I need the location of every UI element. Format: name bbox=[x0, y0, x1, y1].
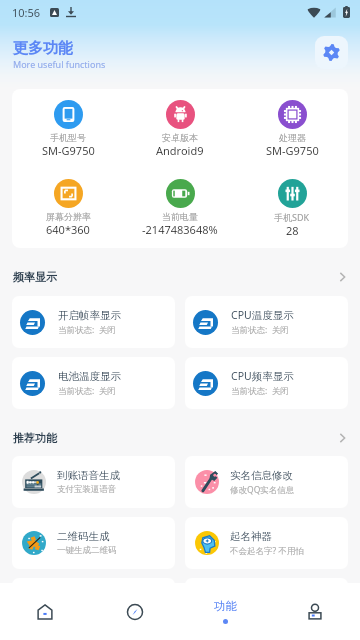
staticText: 处理器 bbox=[279, 132, 306, 143]
staticText: 640*360 bbox=[46, 222, 90, 237]
button[interactable]: Discover bbox=[90, 583, 180, 640]
staticText: 更多功能 bbox=[13, 39, 73, 58]
button[interactable]: 到账语音生成 bbox=[12, 456, 175, 508]
staticText: 安卓版本 bbox=[162, 132, 198, 143]
staticText: -2147483648% bbox=[142, 222, 218, 237]
button[interactable]: 功能 bbox=[180, 583, 270, 640]
button[interactable]: 推荐功能 bbox=[0, 427, 360, 449]
button[interactable]: Settings bbox=[315, 36, 348, 69]
staticText: 当前状态: 关闭 bbox=[231, 385, 289, 397]
staticText: 到账语音生成 bbox=[57, 469, 120, 482]
button[interactable]: 频率显示 bbox=[0, 266, 360, 288]
staticText: 不会起名字? 不用怕 bbox=[230, 545, 304, 557]
staticText: 推荐功能 bbox=[13, 431, 57, 445]
staticText: 实名信息修改 bbox=[230, 469, 293, 482]
staticText: 当前状态: 关闭 bbox=[231, 324, 289, 336]
button[interactable]: 起名神器 bbox=[185, 517, 348, 569]
staticText: 一键生成二维码 bbox=[57, 545, 117, 556]
staticText: 当前电量 bbox=[162, 211, 198, 222]
button[interactable]: Profile bbox=[270, 583, 360, 640]
button[interactable]: 开启帧率显示 bbox=[12, 296, 175, 348]
staticText: 支付宝装逼语音 bbox=[57, 484, 117, 495]
button[interactable]: 实名信息修改 bbox=[185, 456, 348, 508]
button[interactable]: 安卓版本 bbox=[124, 89, 236, 168]
staticText: SM-G9750 bbox=[266, 143, 319, 158]
button[interactable]: 电池温度显示 bbox=[12, 357, 175, 409]
staticText: 功能 bbox=[214, 599, 237, 613]
staticText: 当前状态: 关闭 bbox=[58, 324, 116, 336]
staticText: 开启帧率显示 bbox=[58, 309, 121, 322]
staticText: 二维码生成 bbox=[57, 530, 110, 543]
staticText: CPU温度显示 bbox=[231, 308, 294, 322]
staticText: 起名神器 bbox=[230, 530, 272, 543]
staticText: SM-G9750 bbox=[42, 143, 95, 158]
button[interactable]: CPU温度显示 bbox=[185, 296, 348, 348]
staticText: 修改QQ实名信息 bbox=[230, 484, 295, 496]
staticText: 电池温度显示 bbox=[58, 370, 121, 383]
button[interactable]: 手机SDK bbox=[236, 168, 348, 247]
button[interactable]: 当前电量 bbox=[124, 168, 236, 247]
button[interactable]: 二维码生成 bbox=[12, 517, 175, 569]
staticText: Android9 bbox=[156, 143, 204, 158]
button[interactable]: 手机型号 bbox=[12, 89, 124, 168]
staticText: 手机SDK bbox=[274, 211, 310, 223]
staticText: 10:56 bbox=[12, 5, 41, 20]
button[interactable]: CPU频率显示 bbox=[185, 357, 348, 409]
staticText: More useful functions bbox=[13, 58, 106, 70]
staticText: 手机型号 bbox=[50, 132, 86, 143]
staticText: 当前状态: 关闭 bbox=[58, 385, 116, 397]
staticText: 屏幕分辨率 bbox=[46, 211, 91, 222]
button[interactable]: 处理器 bbox=[236, 89, 348, 168]
staticText: 28 bbox=[286, 223, 299, 238]
staticText: CPU频率显示 bbox=[231, 369, 294, 383]
staticText: 频率显示 bbox=[13, 270, 57, 284]
button[interactable]: Home bbox=[0, 583, 90, 640]
button[interactable]: 屏幕分辨率 bbox=[12, 168, 124, 247]
